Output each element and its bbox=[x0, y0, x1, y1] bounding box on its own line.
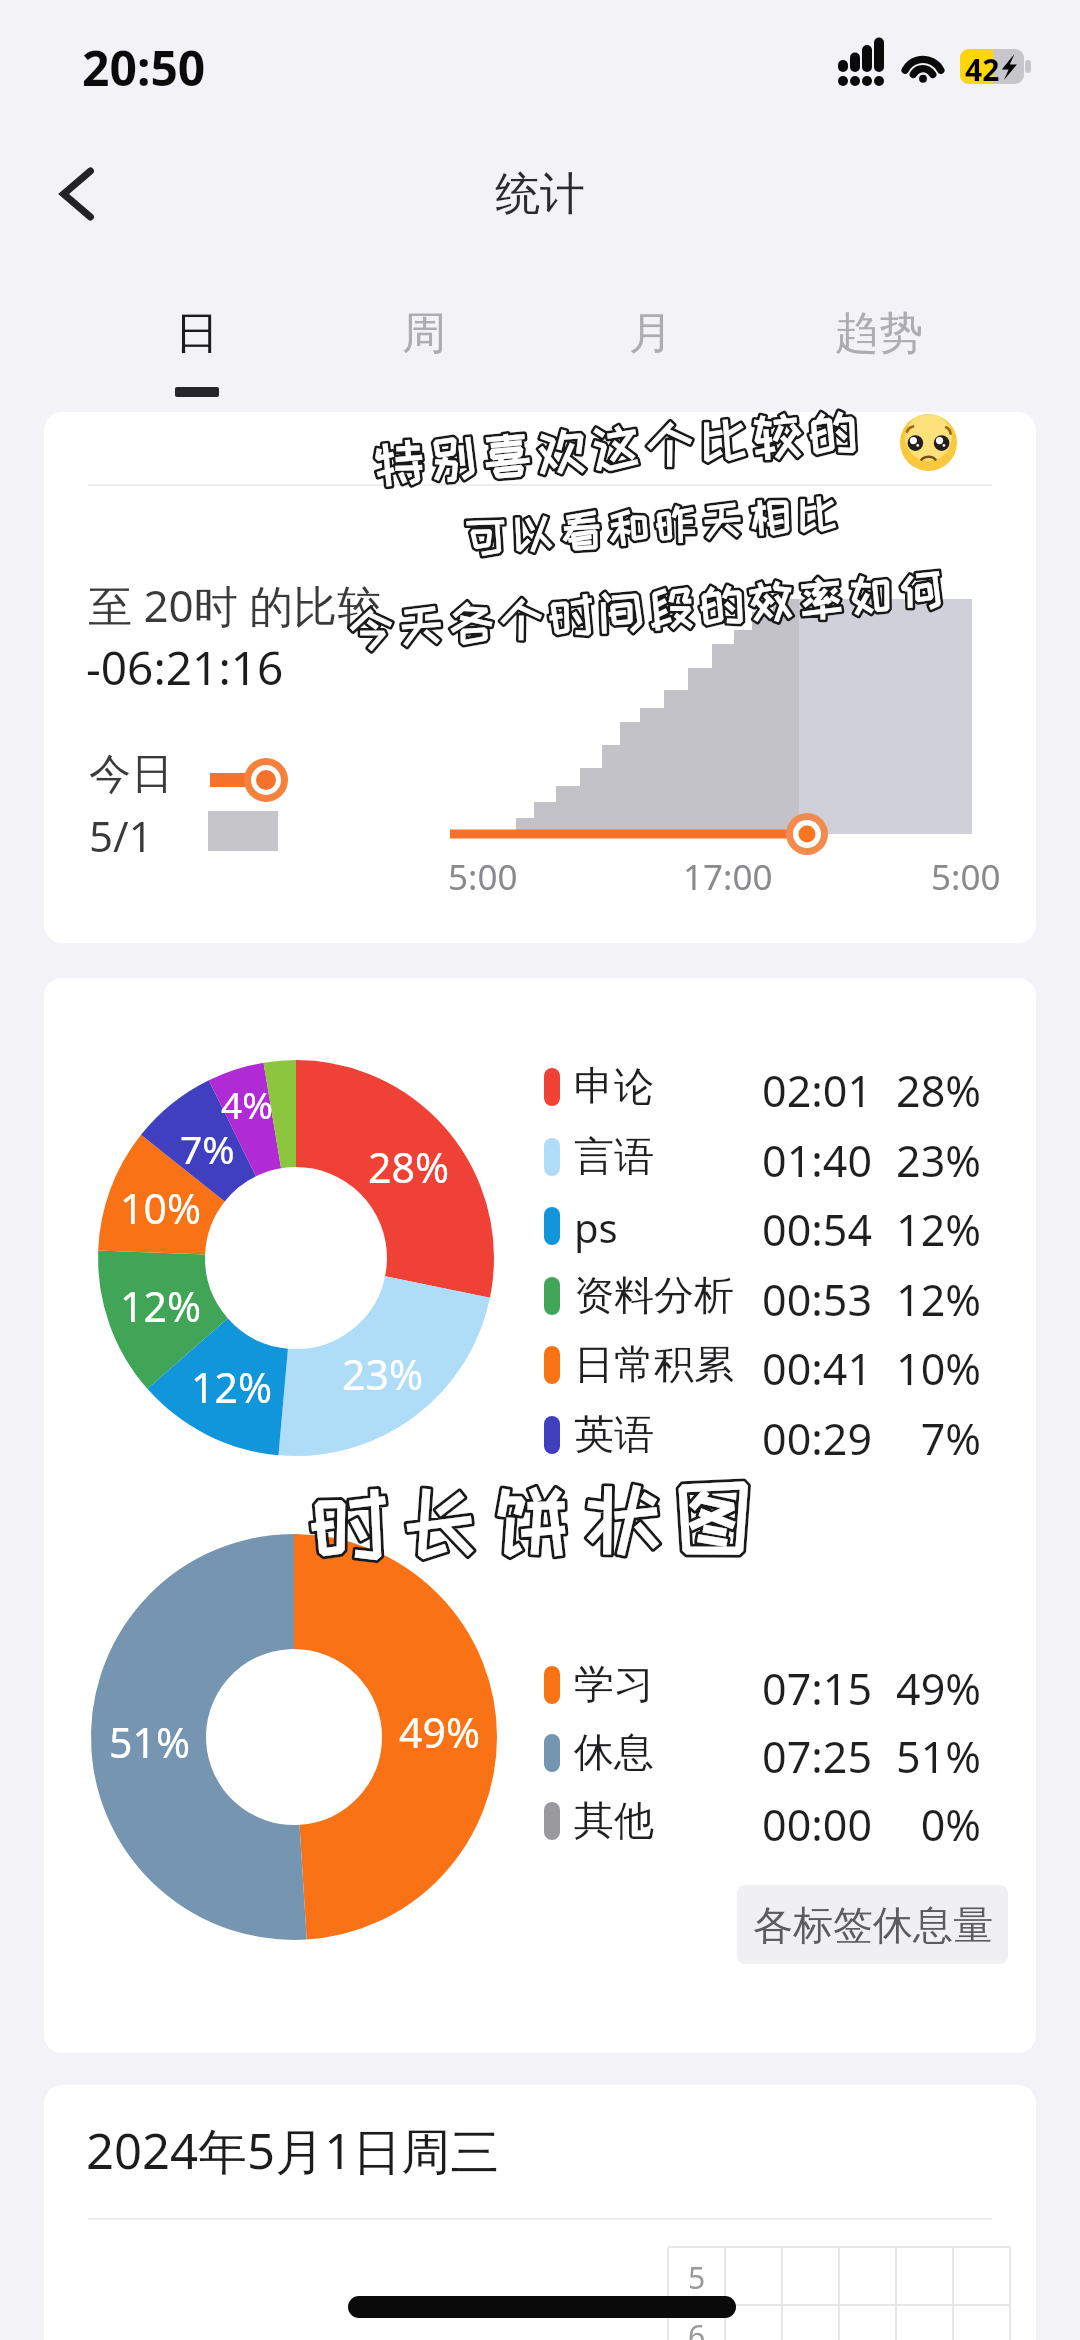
staticText: 4% bbox=[221, 1079, 273, 1129]
staticText: 5 bbox=[688, 2257, 706, 2298]
staticText: 28% bbox=[874, 1061, 981, 1120]
button[interactable]: 趋势 bbox=[794, 306, 964, 418]
staticText: 资料分析 bbox=[574, 1270, 734, 1320]
staticText: 7% bbox=[874, 1409, 981, 1468]
staticText: 各标签休息量 bbox=[753, 1900, 993, 1950]
staticText: 可以看和昨天相比 bbox=[464, 489, 846, 560]
staticText: 今天各个时间段的效率如何 bbox=[347, 564, 950, 655]
staticText: 07:15 bbox=[752, 1659, 872, 1718]
staticText: 23% bbox=[342, 1346, 423, 1402]
staticText: 日 bbox=[175, 306, 219, 361]
staticText: -06:21:16 bbox=[86, 636, 284, 699]
staticText: 20:50 bbox=[82, 35, 206, 100]
staticText: 23% bbox=[874, 1131, 981, 1190]
staticText: 今日 bbox=[89, 748, 173, 801]
staticText: 时长饼状图 bbox=[309, 1474, 768, 1566]
staticText: 统计 bbox=[495, 166, 585, 223]
staticText: 00:41 bbox=[752, 1339, 872, 1398]
staticText: 其他 bbox=[574, 1795, 654, 1845]
staticText: 特别喜欢这个比较的 bbox=[373, 403, 864, 490]
staticText: 特别喜欢这个比较的 bbox=[373, 403, 864, 490]
staticText: 5/1 bbox=[89, 807, 153, 864]
staticText: 英语 bbox=[574, 1409, 654, 1459]
staticText: 01:40 bbox=[752, 1131, 872, 1190]
button[interactable]: 月 bbox=[566, 306, 736, 418]
staticText: ps bbox=[574, 1200, 618, 1254]
staticText: 00:54 bbox=[752, 1200, 872, 1259]
staticText: 00:00 bbox=[752, 1795, 872, 1854]
staticText: 12% bbox=[120, 1278, 201, 1334]
staticText: 51% bbox=[109, 1714, 190, 1770]
staticText: 49% bbox=[874, 1659, 981, 1718]
staticText: 17:00 bbox=[683, 853, 773, 901]
staticText: 42 bbox=[965, 49, 1000, 84]
staticText: 12% bbox=[191, 1359, 272, 1415]
staticText: 07:25 bbox=[752, 1727, 872, 1786]
staticText: 月 bbox=[629, 306, 673, 361]
button[interactable]: 各标签休息量 bbox=[737, 1885, 1008, 1964]
staticText: 0% bbox=[874, 1795, 981, 1854]
staticText: 00:53 bbox=[752, 1270, 872, 1329]
staticText: 51% bbox=[874, 1727, 981, 1786]
staticText: 5:00 bbox=[448, 853, 518, 901]
staticText: 02:01 bbox=[752, 1061, 872, 1120]
button[interactable]: 周 bbox=[339, 306, 509, 418]
button[interactable]: Back bbox=[28, 144, 126, 244]
staticText: 趋势 bbox=[835, 306, 923, 361]
staticText: 10% bbox=[120, 1180, 201, 1236]
staticText: 12% bbox=[874, 1270, 981, 1329]
button[interactable]: 日 bbox=[112, 306, 282, 418]
staticText: 49% bbox=[399, 1704, 480, 1760]
staticText: 日常积累 bbox=[574, 1339, 734, 1389]
staticText: 言语 bbox=[574, 1131, 654, 1181]
staticText: 7% bbox=[180, 1122, 235, 1175]
staticText: 12% bbox=[874, 1200, 981, 1259]
staticText: 时长饼状图 bbox=[309, 1474, 768, 1566]
staticText: 休息 bbox=[574, 1727, 654, 1777]
staticText: 00:29 bbox=[752, 1409, 872, 1468]
staticText: 今天各个时间段的效率如何 bbox=[347, 564, 950, 655]
staticText: 5:00 bbox=[931, 853, 1001, 901]
staticText: 10% bbox=[874, 1339, 981, 1398]
staticText: 学习 bbox=[574, 1659, 654, 1709]
staticText: 申论 bbox=[574, 1061, 654, 1111]
staticText: 28% bbox=[368, 1139, 449, 1195]
staticText: 至 20时 的比较 bbox=[88, 575, 382, 635]
staticText: 2024年5月1日周三 bbox=[86, 2117, 500, 2184]
staticText: 6 bbox=[688, 2315, 706, 2340]
staticText: 可以看和昨天相比 bbox=[464, 489, 846, 560]
staticText: 周 bbox=[402, 306, 446, 361]
